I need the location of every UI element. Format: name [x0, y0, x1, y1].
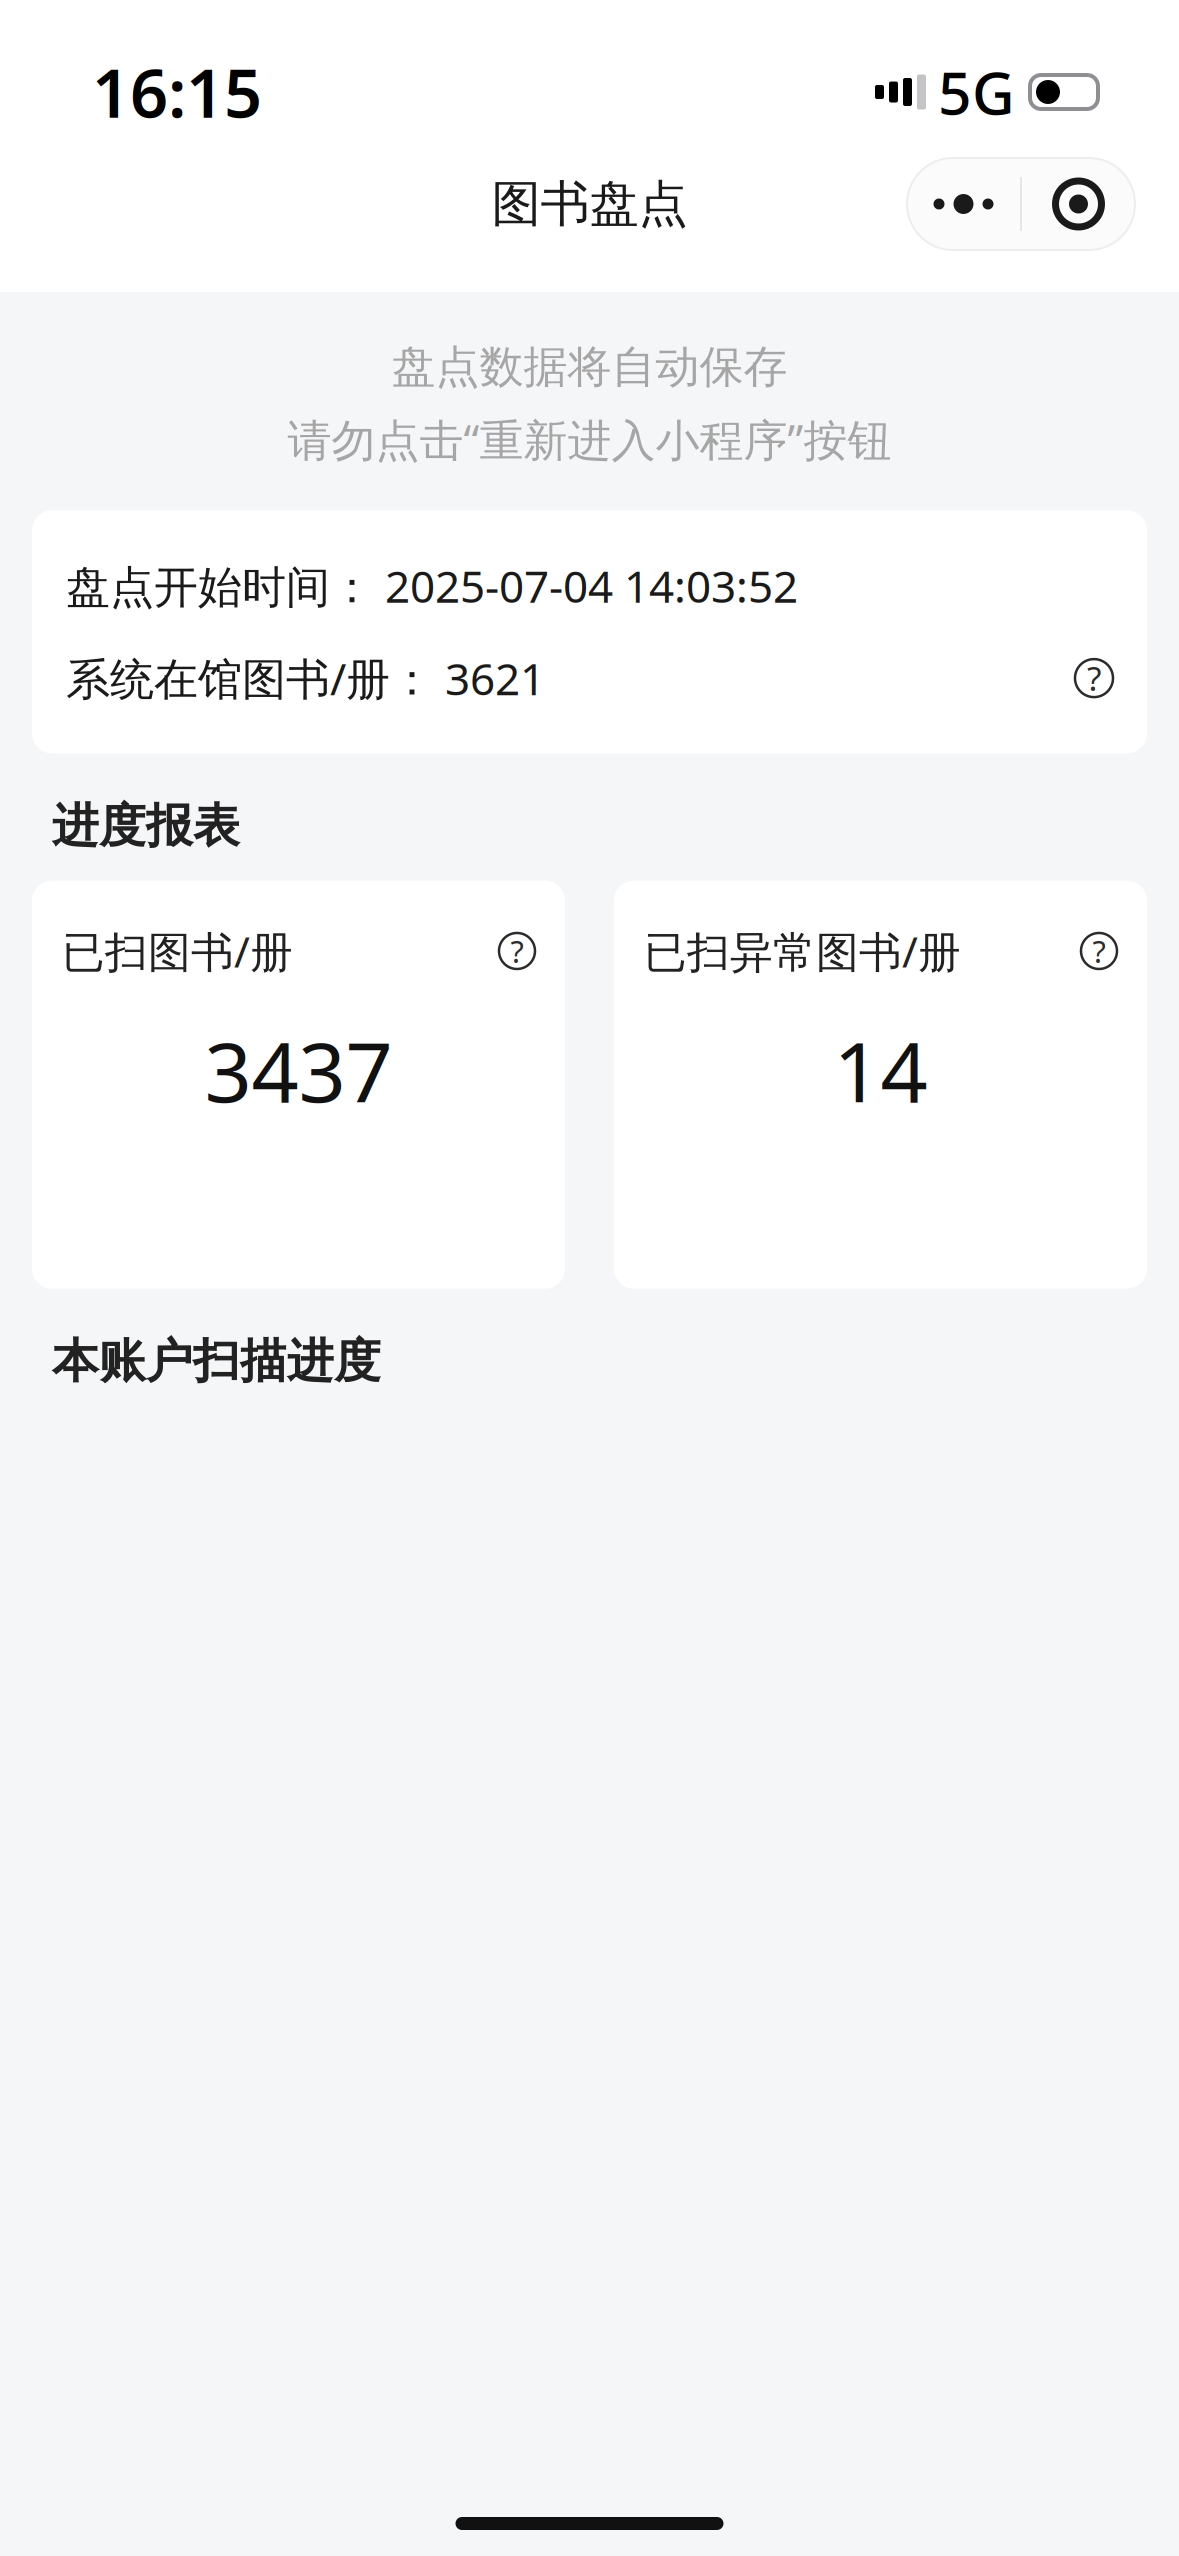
staticText: 3437 [204, 1015, 392, 1125]
staticText: 图书盘点 [491, 174, 687, 234]
staticText: 盘点数据将自动保存 [391, 340, 787, 394]
button[interactable]: 关闭 [1022, 158, 1135, 250]
staticText: 进度报表 [52, 797, 240, 855]
staticText: 已扫图书/册 [62, 923, 293, 979]
staticText: 请勿点击“重新进入小程序”按钮 [287, 410, 891, 468]
button[interactable]: 说明 [1075, 659, 1113, 697]
staticText: ? [1087, 656, 1101, 700]
staticText: 盘点开始时间： 2025-07-04 14:03:52 [66, 556, 798, 615]
staticText: 16:15 [92, 48, 262, 136]
staticText: 已扫异常图书/册 [644, 923, 961, 979]
button[interactable]: 更多 [907, 158, 1020, 250]
staticText: 14 [833, 1015, 927, 1125]
button[interactable]: 说明 [499, 933, 535, 969]
staticText: 5G [938, 53, 1015, 131]
staticText: 系统在馆图书/册： 3621 [66, 649, 545, 707]
staticText: ? [1092, 931, 1105, 971]
staticText: 本账户扫描进度 [52, 1333, 381, 1390]
staticText: ? [510, 931, 523, 971]
button[interactable]: 说明 [1081, 933, 1117, 969]
